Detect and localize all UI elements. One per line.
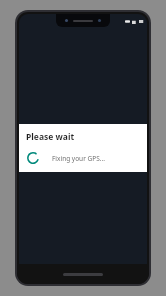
button[interactable]: Please wait [19, 124, 147, 172]
staticText: Fixing your GPS... [52, 154, 105, 163]
staticText: Please wait [26, 131, 75, 143]
